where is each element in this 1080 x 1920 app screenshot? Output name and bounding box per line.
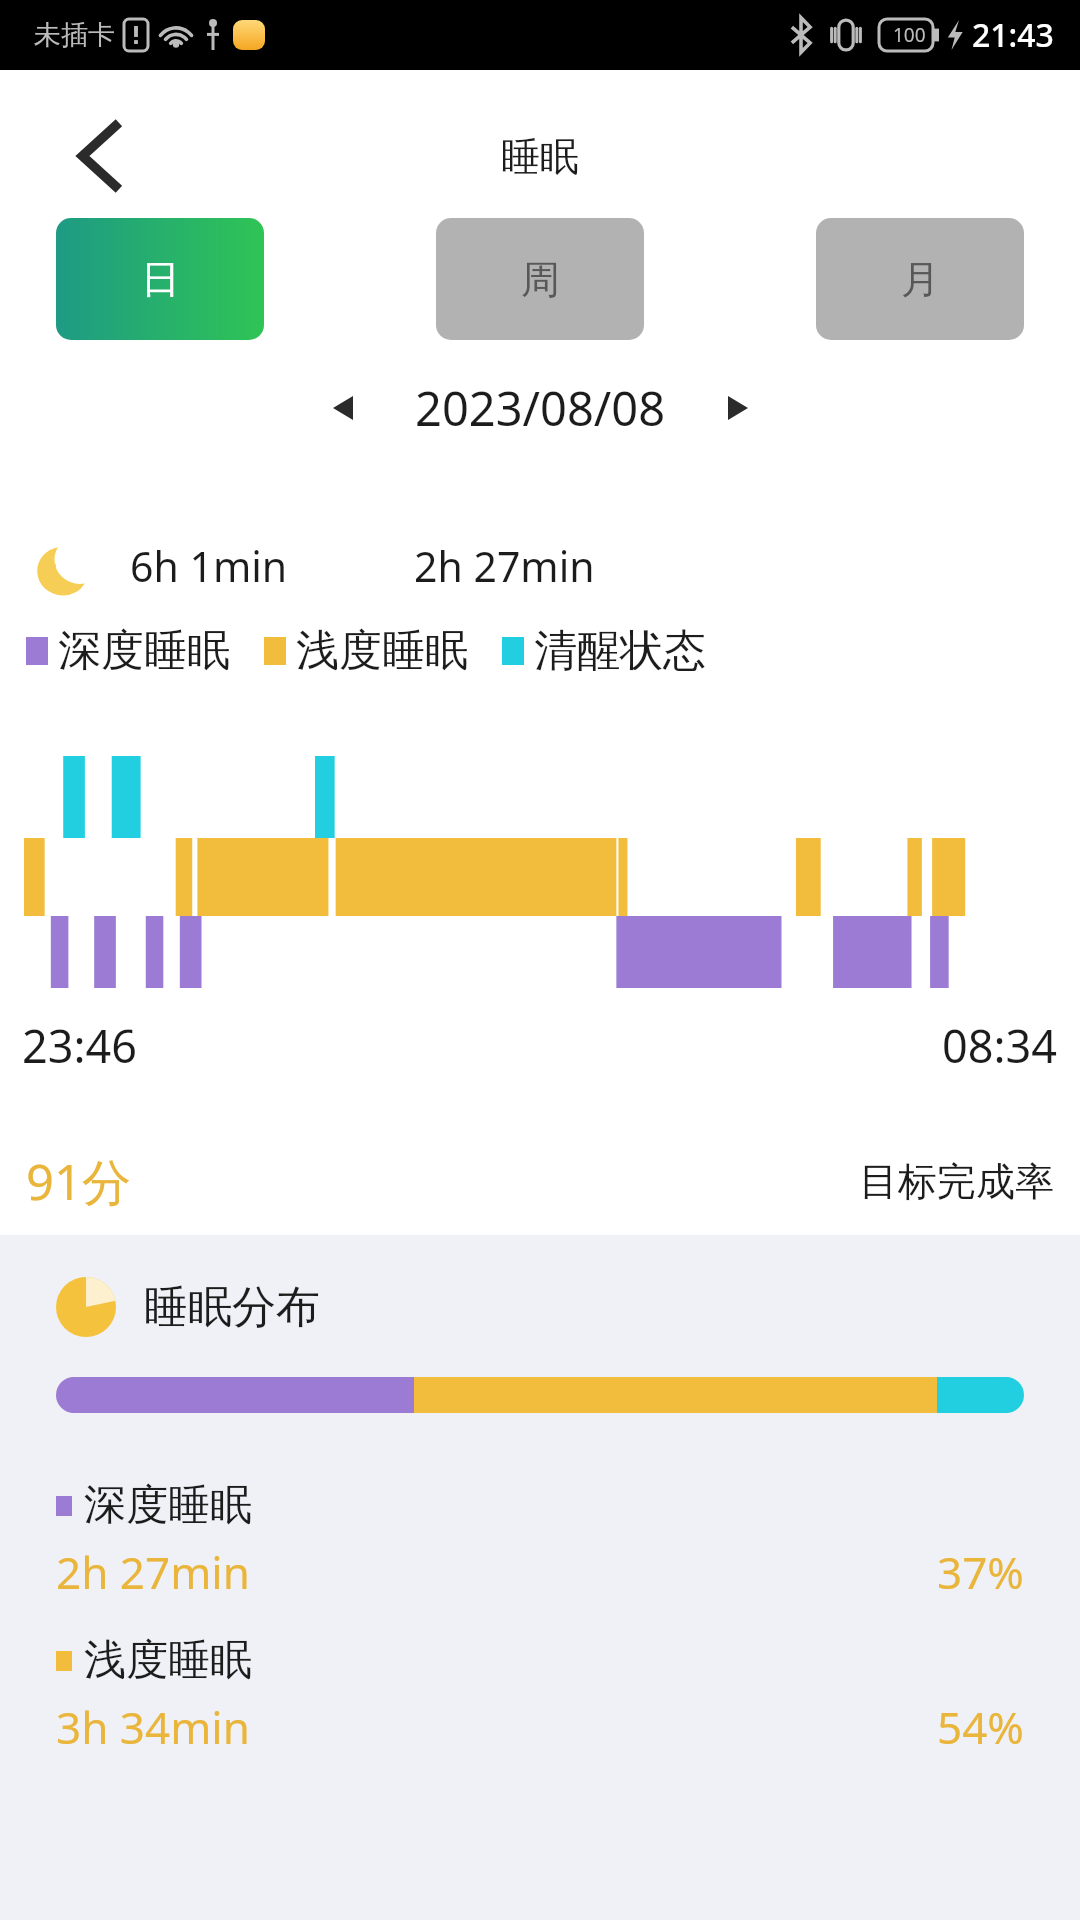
staticText: 2h 27min — [414, 538, 595, 594]
staticText: 目标完成率 — [859, 1157, 1054, 1206]
staticText: 3h 34min — [56, 1697, 250, 1757]
staticText: 37% — [937, 1542, 1024, 1602]
staticText: 2023/08/08 — [415, 376, 666, 440]
button[interactable]: Previous day — [313, 378, 373, 438]
staticText: 100 — [893, 22, 926, 48]
button[interactable]: 深度睡眠 — [56, 1479, 1024, 1602]
button[interactable]: Next day — [708, 378, 768, 438]
button[interactable]: 周 — [436, 218, 644, 340]
staticText: 睡眠 — [501, 132, 579, 181]
staticText: 浅度睡眠 — [84, 1634, 252, 1687]
staticText: 54% — [937, 1697, 1024, 1757]
staticText: 日 — [141, 255, 180, 304]
button[interactable]: 月 — [816, 218, 1024, 340]
staticText: 深度睡眠 — [58, 624, 230, 678]
staticText: 月 — [901, 255, 940, 304]
staticText: 6h 1min — [130, 538, 288, 594]
staticText: 周 — [521, 255, 560, 304]
button[interactable]: 浅度睡眠 — [56, 1634, 1024, 1757]
staticText: 2h 27min — [56, 1542, 250, 1602]
staticText: 21:43 — [972, 13, 1054, 57]
staticText: 清醒状态 — [534, 624, 706, 678]
staticText: 浅度睡眠 — [296, 624, 468, 678]
staticText: 未插卡 — [34, 18, 115, 52]
staticText: 睡眠分布 — [144, 1280, 320, 1335]
staticText: 08:34 — [942, 1015, 1058, 1076]
button[interactable]: Back — [62, 118, 138, 194]
button[interactable]: 日 — [56, 218, 264, 340]
staticText: 深度睡眠 — [84, 1479, 252, 1532]
staticText: 91分 — [26, 1148, 132, 1215]
staticText: 23:46 — [22, 1015, 138, 1076]
